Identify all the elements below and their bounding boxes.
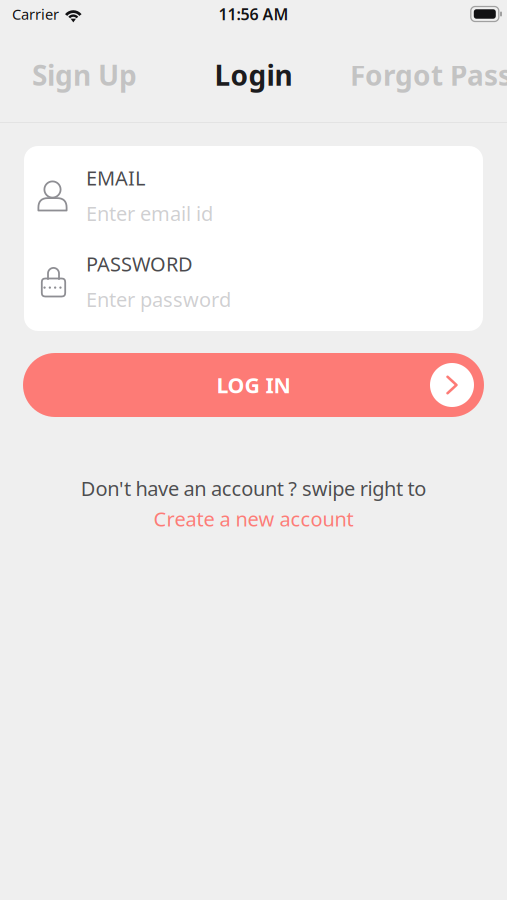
button[interactable]: Sign Up — [0, 28, 169, 122]
staticText: Login — [214, 56, 292, 94]
button[interactable]: Create a new account — [153, 506, 353, 532]
staticText: LOG IN — [216, 371, 290, 399]
button[interactable]: LOG IN — [23, 353, 484, 417]
staticText: Forgot Password — [350, 56, 507, 94]
staticText: Enter email id — [86, 200, 213, 227]
staticText: Don't have an account ? swipe right to — [81, 475, 426, 502]
staticText: Enter password — [86, 286, 231, 313]
staticText: EMAIL — [86, 164, 145, 191]
staticText: Create a new account — [153, 506, 353, 532]
button[interactable]: Login — [169, 28, 338, 122]
staticText: Carrier — [12, 4, 59, 24]
button[interactable]: Forgot Password — [338, 28, 507, 122]
staticText: Sign Up — [32, 56, 137, 94]
staticText: PASSWORD — [86, 250, 193, 277]
staticText: 11:56 AM — [218, 3, 288, 25]
